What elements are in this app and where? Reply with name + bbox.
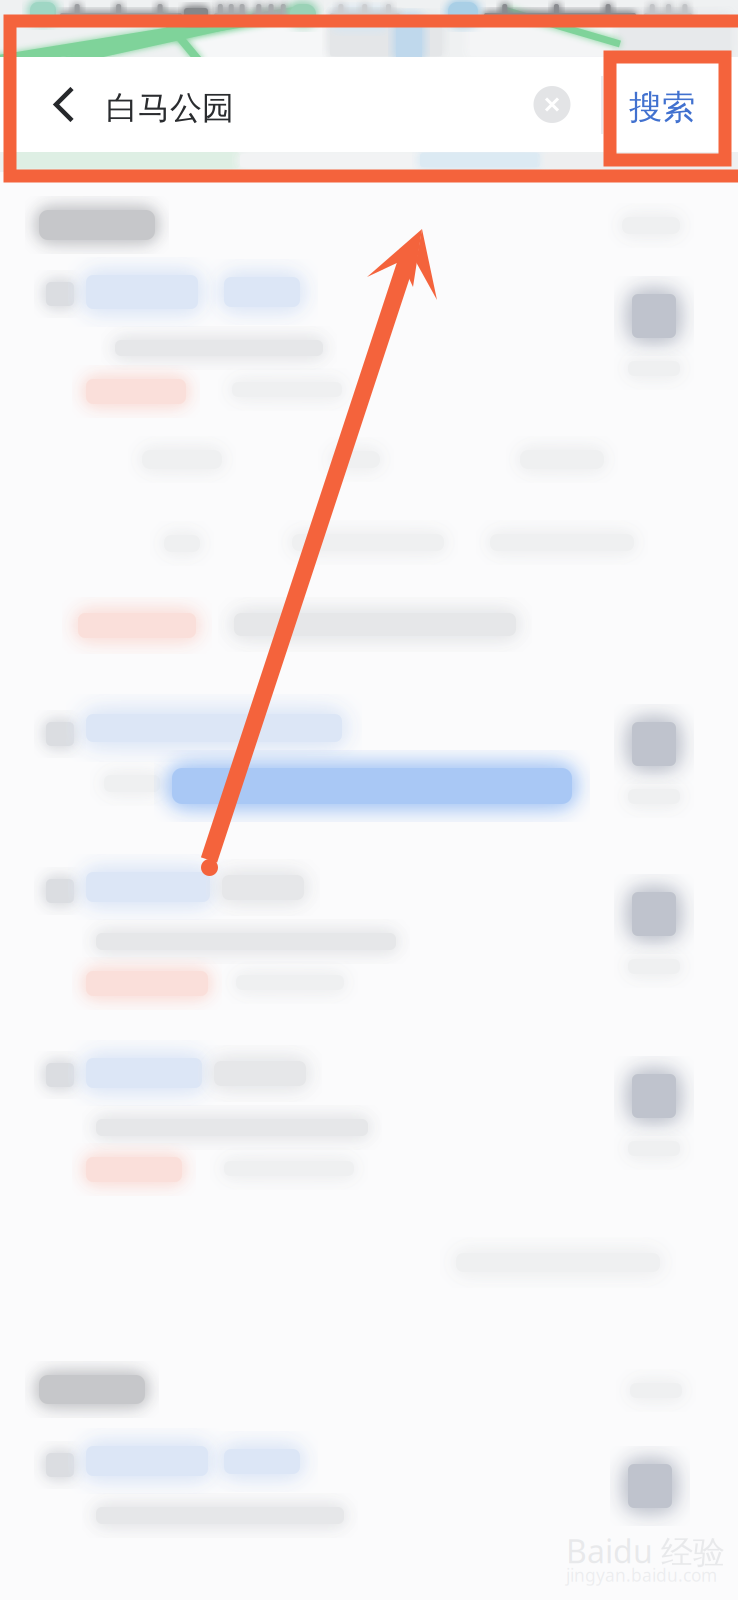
staticText: 白马公园 [106,88,234,128]
staticText: jingyan.baidu.com [566,1563,717,1586]
button[interactable]: 返回 [20,57,108,152]
button[interactable]: 清除 [512,57,592,152]
button[interactable]: 搜索 [606,60,718,155]
staticText: Baidu 经验 [566,1530,725,1572]
staticText: 搜索 [629,87,695,128]
